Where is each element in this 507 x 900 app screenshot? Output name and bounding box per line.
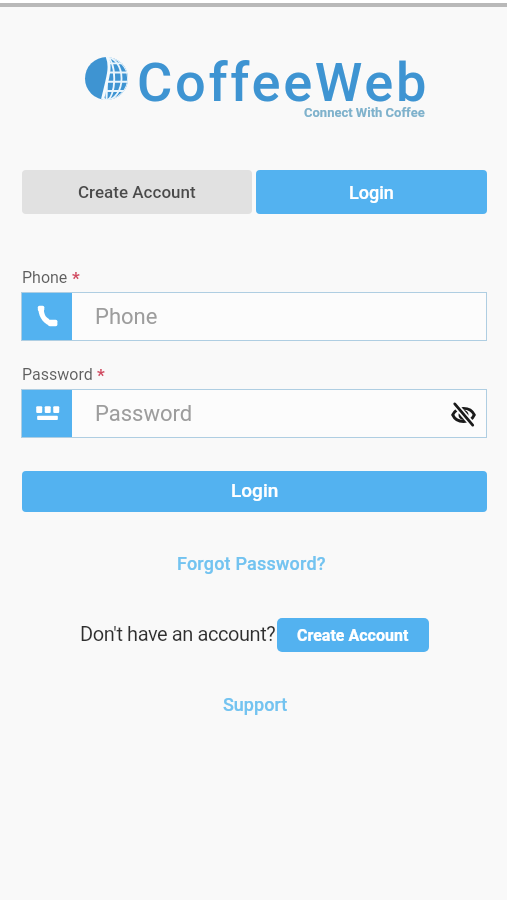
staticText: Connect With Coffee	[304, 105, 425, 120]
staticText: Create Account	[78, 182, 196, 202]
staticText: Phone	[95, 304, 487, 330]
staticText: CoffeeWeb	[137, 51, 430, 114]
staticText: Support	[223, 694, 288, 715]
button[interactable]: Phone	[21, 292, 487, 341]
staticText: Login	[231, 479, 279, 501]
button[interactable]: Support	[213, 688, 298, 721]
staticText: Password	[95, 401, 443, 427]
button[interactable]: Password	[21, 389, 487, 438]
button[interactable]: Login	[22, 471, 487, 512]
staticText: Create Account	[297, 626, 409, 645]
staticText: Login	[349, 182, 394, 203]
button[interactable]: Show password	[443, 394, 483, 434]
staticText: Don't have an account?	[80, 622, 276, 645]
staticText: Phone	[22, 268, 68, 287]
button[interactable]: Forgot Password?	[167, 547, 336, 580]
staticText: *	[97, 365, 105, 385]
staticText: *	[72, 268, 80, 288]
button[interactable]: Login	[256, 170, 487, 214]
staticText: Forgot Password?	[177, 553, 326, 574]
button[interactable]: Create Account	[22, 170, 252, 214]
staticText: Password	[22, 365, 93, 384]
button[interactable]: Create Account	[277, 618, 429, 652]
